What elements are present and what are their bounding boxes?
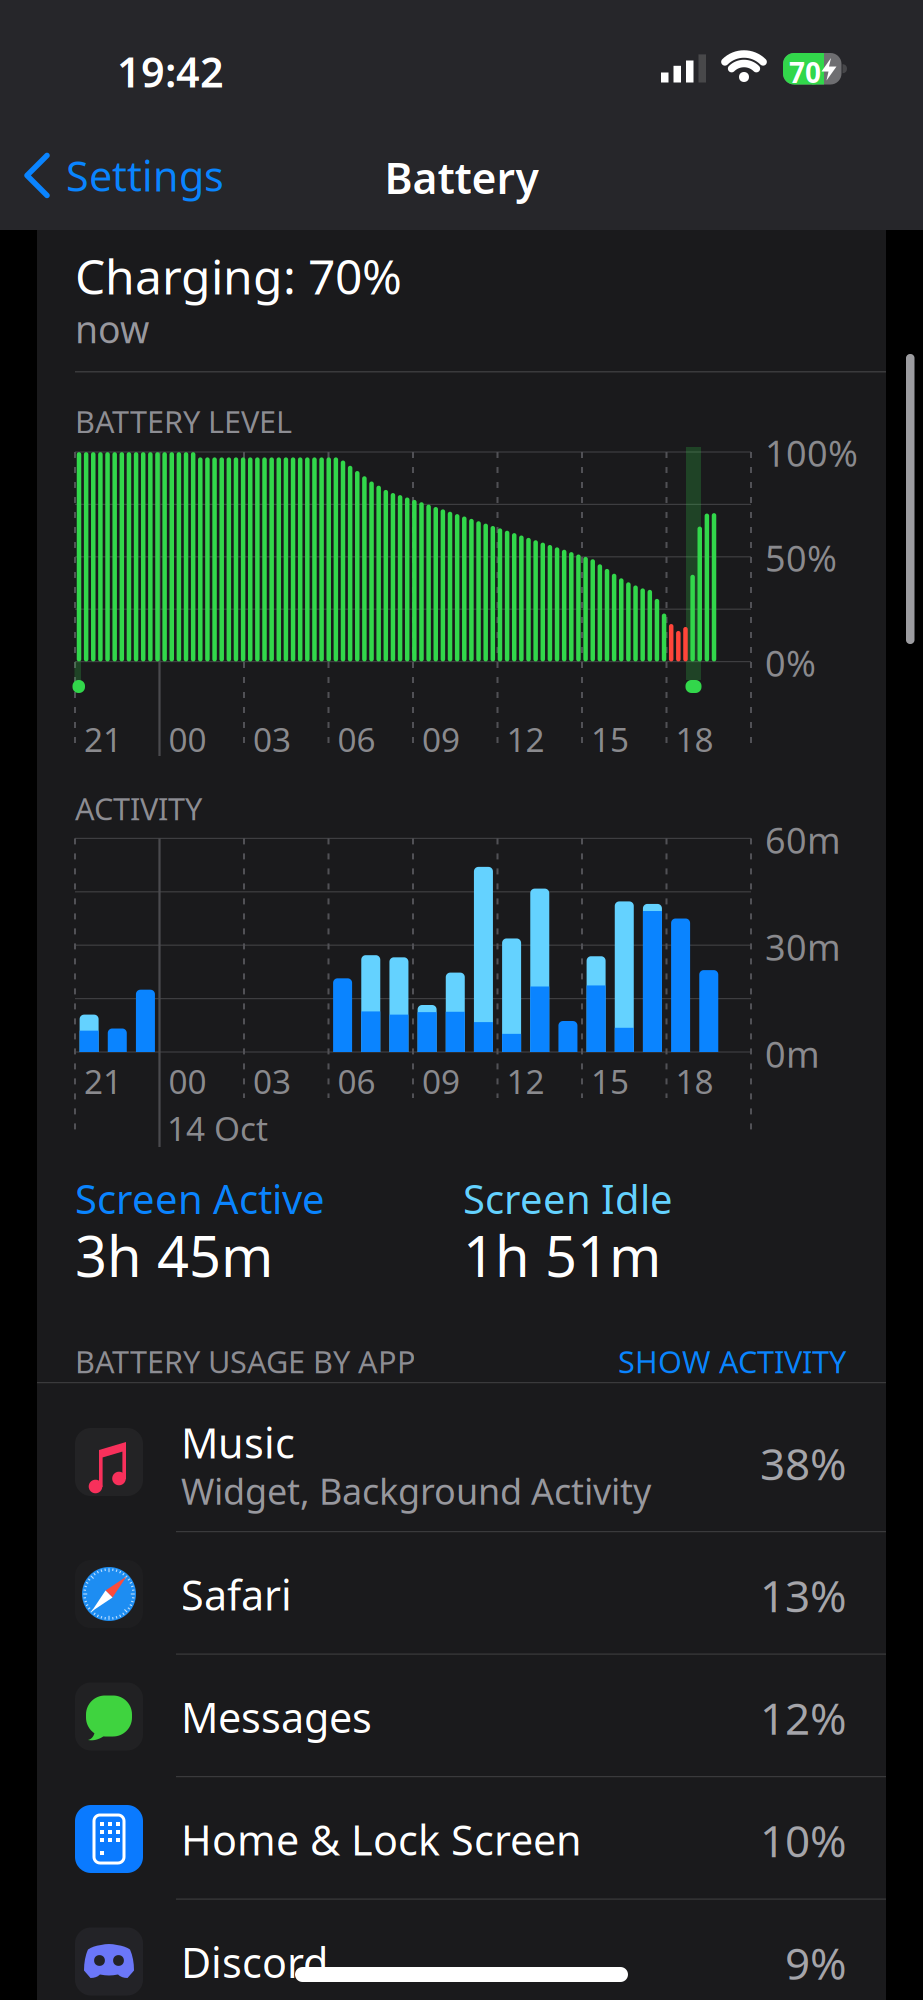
staticText: 00 (168, 717, 206, 761)
staticText: 30m (765, 923, 841, 971)
staticText: Widget, Background Activity (181, 1467, 651, 1515)
staticText: 0m (765, 1030, 820, 1078)
button[interactable]: SHOW ACTIVITY (446, 1341, 846, 1382)
staticText: BATTERY LEVEL (75, 401, 292, 442)
staticText: Home & Lock Screen (181, 1812, 582, 1867)
staticText: 03 (253, 1059, 291, 1103)
staticText: Safari (181, 1567, 292, 1622)
button[interactable]: Settings (22, 148, 224, 203)
staticText: BATTERY USAGE BY APP (75, 1341, 416, 1382)
staticText: ACTIVITY (75, 788, 202, 829)
staticText: Settings (66, 148, 224, 203)
staticText: Battery (384, 149, 538, 206)
staticText: 60m (765, 816, 841, 864)
staticText: 10% (760, 1811, 847, 1869)
staticText: 1h 51m (463, 1218, 661, 1292)
staticText: 100% (765, 429, 858, 477)
staticText: 06 (337, 717, 375, 761)
staticText: 18 (675, 1059, 713, 1103)
staticText: 13% (760, 1566, 847, 1624)
staticText: 09 (422, 1059, 460, 1103)
staticText: 9% (785, 1933, 847, 1992)
button[interactable]: Discord (37, 1899, 886, 2000)
staticText: Charging: 70% (75, 244, 402, 308)
staticText: 15 (591, 1059, 629, 1103)
staticText: 18 (675, 717, 713, 761)
staticText: 3h 45m (75, 1218, 273, 1292)
staticText: 19:42 (117, 44, 224, 99)
staticText: 21 (84, 717, 122, 761)
staticText: 70 (789, 53, 821, 91)
staticText: Screen Idle (463, 1172, 673, 1225)
staticText: 06 (337, 1059, 375, 1103)
staticText: Screen Active (75, 1172, 325, 1225)
button[interactable]: Music (37, 1383, 886, 1531)
button[interactable]: Messages (37, 1654, 886, 1776)
staticText: 00 (168, 1059, 206, 1103)
staticText: 12 (506, 717, 544, 761)
staticText: 12% (760, 1688, 847, 1747)
staticText: now (75, 304, 149, 354)
staticText: Messages (181, 1689, 372, 1744)
staticText: 21 (84, 1059, 122, 1103)
staticText: Music (181, 1415, 295, 1470)
staticText: 09 (422, 717, 460, 761)
staticText: 15 (591, 717, 629, 761)
staticText: 50% (765, 534, 837, 582)
staticText: 38% (760, 1434, 847, 1492)
staticText: 0% (765, 639, 816, 687)
button[interactable]: Home & Lock Screen (37, 1777, 886, 1899)
staticText: Discord (181, 1934, 328, 1989)
staticText: SHOW ACTIVITY (618, 1341, 846, 1382)
staticText: 12 (506, 1059, 544, 1103)
button[interactable]: Safari (37, 1532, 886, 1654)
staticText: 03 (253, 717, 291, 761)
staticText: 14 Oct (167, 1106, 268, 1150)
